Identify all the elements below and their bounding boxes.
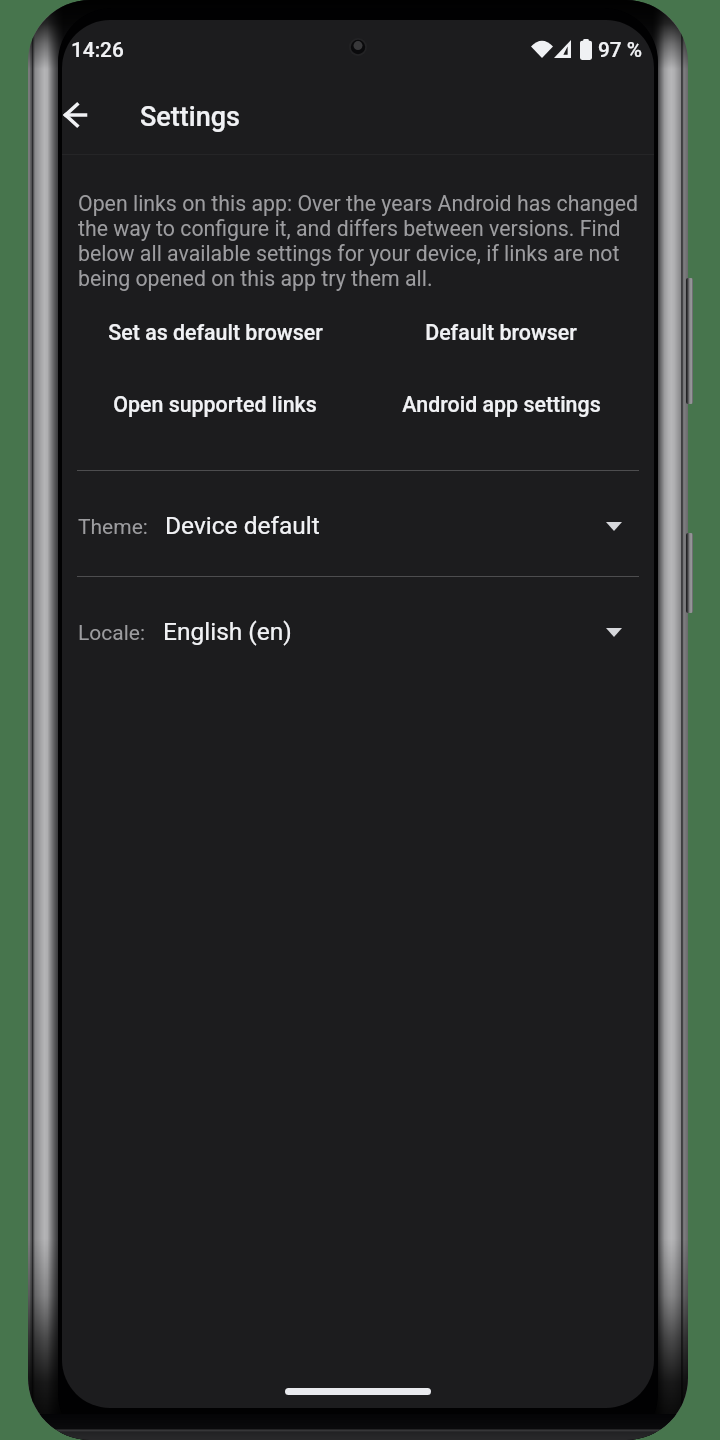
staticText: Default browser	[425, 320, 577, 345]
staticText: Device default	[165, 511, 320, 540]
button[interactable]: Open supported links	[72, 368, 358, 440]
staticText: Open supported links	[113, 392, 317, 417]
staticText: 14:26	[71, 38, 124, 62]
staticText: Theme:	[78, 515, 148, 540]
staticText: English (en)	[163, 617, 292, 646]
button[interactable]: Locale:	[62, 577, 654, 682]
staticText: Set as default browser	[108, 320, 323, 345]
staticText: Locale:	[78, 621, 146, 646]
staticText: Open links on this app: Over the years A…	[78, 191, 638, 291]
button[interactable]: Set as default browser	[72, 296, 358, 368]
staticText: Settings	[140, 101, 240, 133]
staticText: Android app settings	[402, 392, 601, 417]
staticText: 97 %	[598, 38, 643, 62]
button[interactable]: Default browser	[358, 296, 644, 368]
button[interactable]: Theme:	[62, 471, 654, 576]
button[interactable]: Android app settings	[358, 368, 644, 440]
button[interactable]: Navigate up	[62, 91, 100, 139]
